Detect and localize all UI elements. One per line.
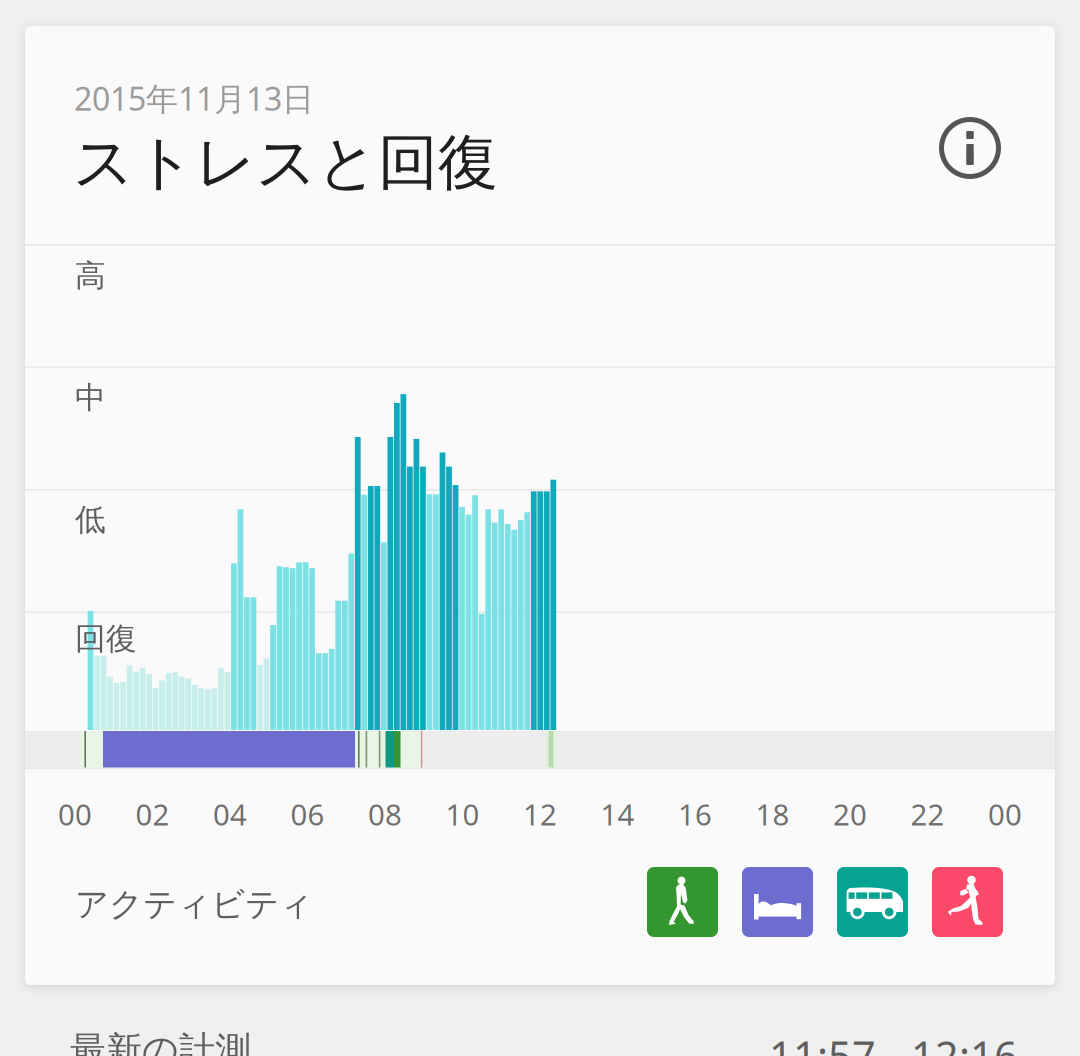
button[interactable]: Running — [932, 867, 1003, 937]
staticText: 高 — [75, 257, 106, 295]
button[interactable]: Info — [935, 113, 1005, 183]
staticText: 回復 — [75, 620, 137, 658]
staticText: 22 — [910, 794, 944, 833]
staticText: 04 — [213, 794, 247, 833]
staticText: 16 — [678, 794, 712, 833]
staticText: 2015年11月13日 — [74, 77, 314, 119]
button[interactable]: Walking — [647, 867, 718, 937]
staticText: 20 — [833, 794, 867, 833]
staticText: 低 — [75, 501, 106, 539]
staticText: 14 — [600, 794, 634, 833]
staticText: 02 — [135, 794, 169, 833]
staticText: 最新の計測 — [70, 1028, 251, 1056]
staticText: 中 — [75, 379, 106, 417]
staticText: 06 — [290, 794, 324, 833]
staticText: 12 — [523, 794, 557, 833]
staticText: アクティビティ — [75, 884, 313, 925]
staticText: 00 — [58, 794, 92, 833]
staticText: ストレスと回復 — [73, 126, 498, 200]
staticText: 10 — [445, 794, 479, 833]
staticText: 08 — [368, 794, 402, 833]
button[interactable]: Sleep — [742, 867, 813, 937]
button[interactable]: Vehicle — [837, 867, 908, 937]
staticText: 18 — [755, 794, 789, 833]
staticText: 11:57 - 12:16 — [769, 1028, 1018, 1056]
staticText: 00 — [988, 794, 1022, 833]
